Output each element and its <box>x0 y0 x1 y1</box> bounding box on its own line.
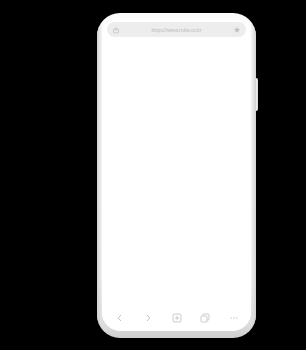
button[interactable]: Secure connection <box>107 22 246 37</box>
button[interactable]: New tab <box>166 307 188 329</box>
button[interactable]: Back <box>109 307 131 329</box>
button[interactable]: Power button <box>253 78 258 111</box>
button[interactable]: Tabs <box>194 307 216 329</box>
staticText: https://www.rolex.co.kr <box>151 27 202 33</box>
other: Secure connection <box>112 26 120 34</box>
button[interactable]: More options <box>223 307 245 329</box>
button[interactable]: Forward <box>137 307 159 329</box>
button[interactable]: Bookmark <box>233 26 241 34</box>
